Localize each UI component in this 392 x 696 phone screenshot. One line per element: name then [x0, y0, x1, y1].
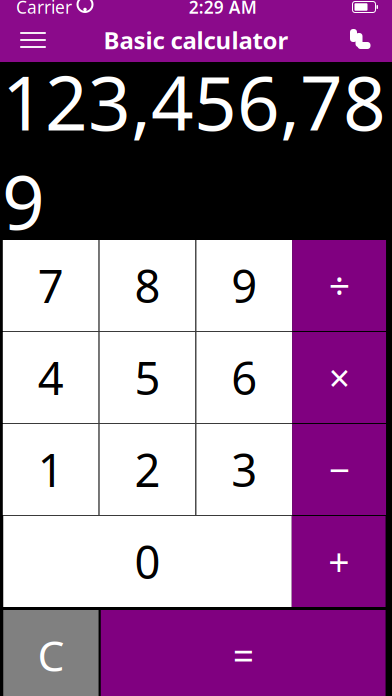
- staticText: 2:29 AM: [189, 0, 257, 18]
- staticText: +: [328, 537, 349, 586]
- button[interactable]: Call: [332, 18, 386, 62]
- staticText: 6: [231, 347, 257, 408]
- button[interactable]: 6: [196, 332, 292, 423]
- staticText: 9: [231, 255, 257, 316]
- staticText: 5: [134, 347, 160, 408]
- button[interactable]: 7: [3, 240, 99, 331]
- staticText: ÷: [329, 261, 350, 310]
- button[interactable]: 0: [3, 516, 292, 607]
- button[interactable]: 8: [100, 240, 195, 331]
- button[interactable]: 9: [196, 240, 292, 331]
- staticText: 8: [134, 255, 160, 316]
- staticText: ×: [329, 353, 350, 402]
- button[interactable]: ×: [292, 332, 386, 423]
- staticText: =: [233, 630, 254, 680]
- staticText: −: [329, 445, 350, 494]
- button[interactable]: 1: [3, 424, 99, 515]
- button[interactable]: Menu: [6, 18, 60, 62]
- staticText: 2: [134, 439, 160, 500]
- staticText: C: [37, 627, 64, 683]
- button[interactable]: 3: [196, 424, 292, 515]
- staticText: 4: [38, 347, 64, 408]
- staticText: Carrier: [16, 0, 72, 18]
- staticText: 3: [231, 439, 257, 500]
- button[interactable]: C: [3, 610, 99, 696]
- button[interactable]: 4: [3, 332, 99, 423]
- button[interactable]: +: [292, 516, 386, 607]
- button[interactable]: −: [292, 424, 386, 515]
- button[interactable]: ÷: [292, 240, 386, 331]
- staticText: 7: [38, 255, 64, 316]
- staticText: 0: [134, 531, 160, 592]
- button[interactable]: =: [101, 610, 386, 696]
- staticText: 123,456,789: [2, 52, 386, 250]
- button[interactable]: 5: [100, 332, 195, 423]
- staticText: Basic calculator: [103, 24, 288, 56]
- staticText: 1: [38, 439, 64, 500]
- button[interactable]: 2: [100, 424, 195, 515]
